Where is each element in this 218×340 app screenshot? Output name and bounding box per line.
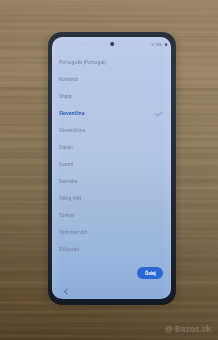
staticText: Suomi [59, 161, 74, 168]
staticText: Română [59, 76, 78, 83]
button[interactable]: Ďalej [137, 267, 163, 279]
staticText: Türkçe [59, 212, 74, 219]
staticText: 72% [155, 42, 163, 47]
button[interactable]: Română [52, 71, 171, 88]
button[interactable]: Shqip [52, 88, 171, 105]
staticText: Slovenčina [59, 110, 85, 117]
staticText: @ Bazos.sk [165, 323, 212, 335]
staticText: Slovenščina [59, 127, 86, 134]
staticText: Ελληνικά [59, 246, 80, 253]
button[interactable]: Ελληνικά [52, 241, 171, 258]
button[interactable]: Srpski [52, 139, 171, 156]
button[interactable]: Türkçe [52, 207, 171, 224]
button[interactable]: Türkmen dili [52, 224, 171, 241]
staticText: Srpski [59, 144, 73, 151]
button[interactable]: Slovenčina [52, 105, 171, 122]
button[interactable]: Português (Portugal) [52, 54, 171, 71]
staticText: Shqip [59, 93, 72, 100]
button[interactable]: Svenska [52, 173, 171, 190]
staticText: Svenska [59, 178, 78, 185]
staticText: Tiếng Việt [59, 195, 82, 202]
button[interactable]: Back [62, 287, 70, 296]
staticText: Türkmen dili [59, 229, 87, 236]
staticText: Ďalej [145, 270, 156, 276]
button[interactable]: Suomi [52, 156, 171, 173]
button[interactable]: Tiếng Việt [52, 190, 171, 207]
button[interactable]: Slovenščina [52, 122, 171, 139]
staticText: Português (Portugal) [59, 59, 106, 66]
